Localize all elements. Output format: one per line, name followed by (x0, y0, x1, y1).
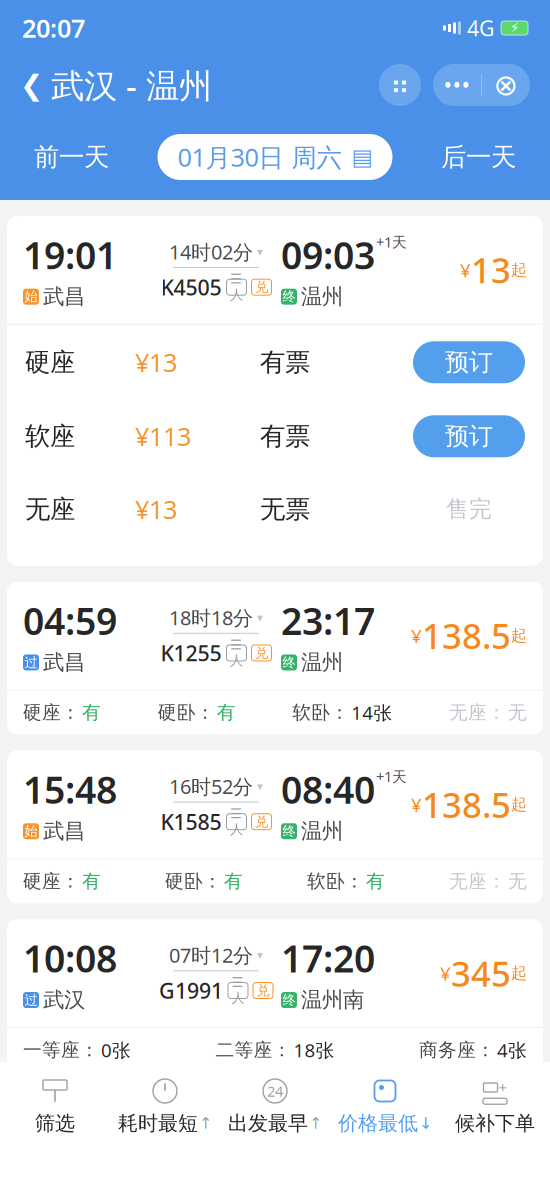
staticText: 硬卧： (165, 870, 222, 893)
staticText: 有 (82, 870, 101, 893)
staticText: 20:07 (22, 11, 85, 45)
staticText: 07时12分 (169, 942, 253, 968)
staticText: 无票 (260, 494, 310, 525)
staticText: ¥13 (135, 345, 177, 379)
staticText: 终 (282, 992, 295, 1008)
staticText: 08:40 (281, 765, 375, 814)
staticText: 软卧： (307, 870, 364, 893)
staticText: 24 (267, 1081, 283, 1101)
staticText: 无 (508, 870, 527, 893)
staticText: 23:17 (281, 596, 375, 645)
staticText: ☰人 (231, 975, 244, 1006)
staticText: 价格最低 (338, 1111, 418, 1136)
staticText: 兑 (255, 279, 268, 295)
staticText: 138.5 (422, 613, 511, 659)
staticText: ▾ (257, 948, 263, 962)
staticText: 有 (366, 870, 385, 893)
staticText: 温州 (301, 284, 343, 310)
staticText: ⚡︎ (510, 20, 519, 35)
button[interactable]: 筛选 (0, 1070, 110, 1144)
staticText: ¥ (411, 792, 422, 817)
staticText: 起 (511, 626, 527, 645)
staticText: 筛选 (35, 1111, 75, 1136)
staticText: 04:59 (23, 596, 117, 645)
staticText: 二等座： (215, 1039, 291, 1062)
staticText: 起 (511, 260, 527, 280)
staticText: 0张 (101, 1038, 131, 1062)
staticText: 武汉 - 温州 (51, 63, 212, 107)
button[interactable]: 24 (220, 1070, 330, 1144)
staticText: 温州南 (301, 987, 364, 1013)
staticText: 无座 (25, 494, 75, 525)
staticText: ▾ (257, 245, 263, 258)
staticText: ↑ (309, 1114, 322, 1132)
staticText: 终 (282, 823, 295, 839)
staticText: 01月30日 周六 (177, 140, 341, 174)
staticText: 18张 (293, 1038, 334, 1062)
staticText: 18时18分 (169, 604, 253, 631)
button[interactable]: 预订 (413, 415, 525, 457)
button[interactable]: More (433, 64, 481, 106)
staticText: 17:20 (281, 933, 375, 983)
button[interactable]: 10:08 (7, 919, 543, 1072)
staticText: 4张 (497, 1038, 527, 1062)
staticText: 温州 (301, 818, 343, 844)
staticText: ¥113 (135, 419, 191, 453)
staticText: 14张 (351, 700, 392, 725)
button[interactable]: 后一天 (433, 133, 524, 180)
staticText: +1天 (376, 232, 407, 251)
staticText: 345 (451, 950, 511, 996)
staticText: 预订 (445, 347, 493, 377)
staticText: 出发最早 (228, 1111, 308, 1136)
staticText: K1255 (160, 639, 221, 667)
staticText: 硬卧： (158, 701, 215, 724)
button[interactable]: 15:48 (7, 751, 543, 903)
staticText: 耗时最短 (118, 1111, 198, 1136)
staticText: 软座 (25, 421, 75, 452)
staticText: ▤ (351, 144, 372, 170)
staticText: 武昌 (43, 649, 85, 676)
staticText: 武昌 (43, 818, 85, 844)
staticText: 有 (224, 870, 243, 893)
staticText: 13 (471, 247, 511, 293)
staticText: ⊗ (493, 68, 518, 102)
staticText: 19:01 (23, 230, 117, 280)
staticText: ↓ (419, 1114, 432, 1132)
staticText: 过 (24, 654, 37, 671)
button[interactable]: 预订 (413, 341, 525, 383)
staticText: 一等座： (23, 1039, 99, 1062)
staticText: 16时52分 (169, 773, 253, 800)
staticText: 起 (511, 963, 527, 983)
button[interactable]: 01月30日 周六 (157, 134, 392, 180)
staticText: 预订 (445, 421, 493, 451)
staticText: ¥ (411, 623, 422, 648)
button[interactable]: 04:59 (7, 582, 543, 735)
button[interactable]: ❮ (20, 63, 212, 107)
button[interactable]: 耗时最短 (110, 1070, 220, 1144)
staticText: +1天 (376, 767, 407, 786)
staticText: 后一天 (441, 141, 516, 172)
staticText: 138.5 (422, 781, 511, 827)
staticText: ••• (443, 70, 470, 100)
staticText: ▾ (257, 779, 263, 793)
staticText: 有 (217, 701, 236, 724)
staticText: 始 (24, 823, 37, 839)
button[interactable]: 价格最低 (330, 1070, 440, 1144)
staticText: 起 (511, 795, 527, 814)
staticText: 武汉 (43, 987, 85, 1013)
button[interactable]: + (440, 1070, 550, 1144)
staticText: ▾ (257, 611, 263, 624)
staticText: ☰人 (230, 637, 243, 669)
staticText: ☰人 (230, 271, 243, 303)
staticText: K1585 (160, 808, 221, 836)
staticText: 有票 (260, 347, 310, 378)
button[interactable]: Close (482, 64, 530, 106)
button[interactable]: 前一天 (26, 133, 117, 180)
staticText: 兑 (256, 982, 269, 999)
button[interactable]: Mini program (379, 64, 421, 106)
staticText: 候补下单 (455, 1111, 535, 1136)
staticText: 软卧： (292, 701, 349, 724)
staticText: ↑ (199, 1114, 212, 1132)
staticText: 无座： (449, 701, 506, 724)
staticText: 无 (508, 701, 527, 724)
